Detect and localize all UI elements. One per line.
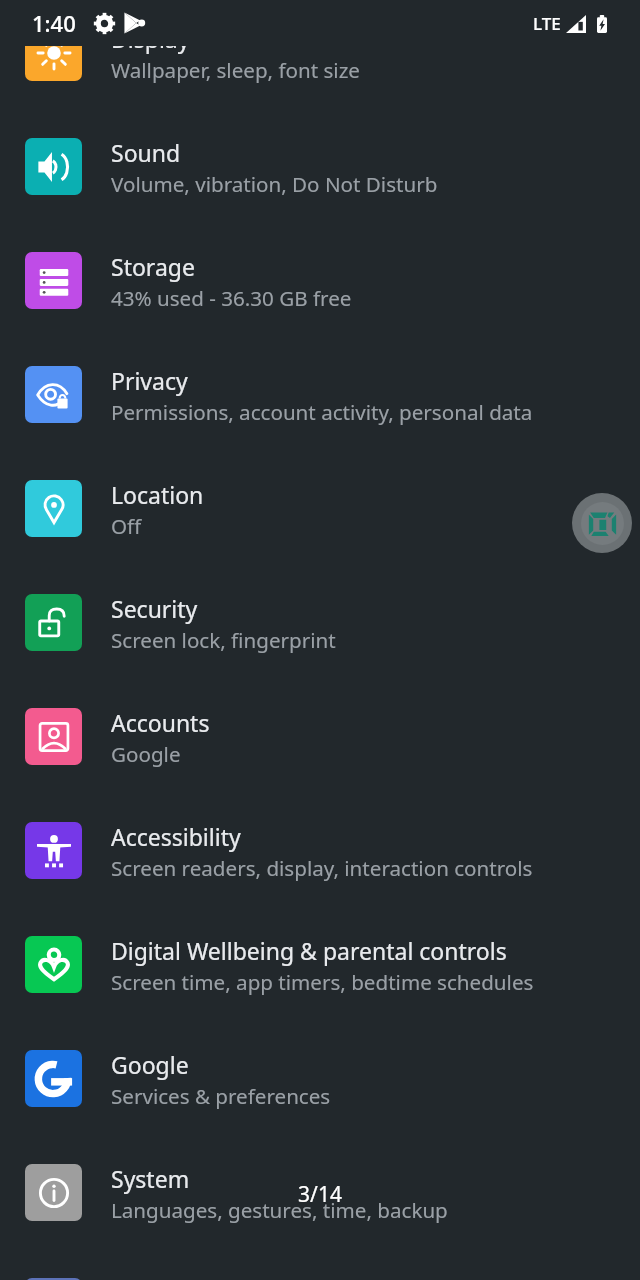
staticText: Screen readers, display, interaction con… [111, 854, 533, 882]
staticText: Permissions, account activity, personal … [111, 398, 533, 426]
staticText: Storage [111, 251, 195, 282]
button[interactable]: Open overlay app [572, 493, 632, 553]
button[interactable]: Location [0, 452, 640, 566]
staticText: 43% used - 36.30 GB free [111, 284, 352, 312]
staticText: Volume, vibration, Do Not Disturb [111, 170, 438, 198]
staticText: Digital Wellbeing & parental controls [111, 935, 507, 966]
staticText: Languages, gestures, time, backup [111, 1196, 448, 1224]
staticText: LTE [533, 12, 561, 35]
button[interactable]: Security [0, 566, 640, 680]
button[interactable]: System [0, 1136, 640, 1250]
button[interactable]: Google [0, 1022, 640, 1136]
staticText: Sound [111, 137, 181, 168]
button[interactable]: Accounts [0, 680, 640, 794]
staticText: Screen lock, fingerprint [111, 626, 336, 654]
button[interactable]: Storage [0, 224, 640, 338]
staticText: Services & preferences [111, 1082, 331, 1110]
button[interactable]: Sound [0, 110, 640, 224]
button[interactable]: Privacy [0, 338, 640, 452]
staticText: Accessibility [111, 821, 241, 852]
staticText: System [111, 1163, 190, 1194]
staticText: Accounts [111, 707, 210, 738]
staticText: Screen time, app timers, bedtime schedul… [111, 968, 534, 996]
staticText: 3/14 [0, 1180, 640, 1209]
staticText: 1:40 [32, 8, 76, 38]
staticText: Display [111, 23, 190, 54]
staticText: Security [111, 593, 198, 624]
button[interactable]: About phone [0, 1250, 640, 1280]
staticText: Privacy [111, 365, 188, 396]
staticText: Wallpaper, sleep, font size [111, 56, 360, 84]
staticText: Location [111, 479, 204, 510]
button[interactable]: Digital Wellbeing & parental controls [0, 908, 640, 1022]
staticText: Google [111, 1049, 189, 1080]
staticText: Google [111, 740, 181, 768]
button[interactable]: Accessibility [0, 794, 640, 908]
staticText: Off [111, 512, 142, 540]
button[interactable]: Display [0, 0, 640, 110]
